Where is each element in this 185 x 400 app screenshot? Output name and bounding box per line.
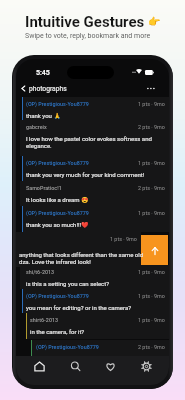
button[interactable]: SamoPratioc!1 [20, 181, 169, 206]
button[interactable]: shi/t6-2013 [20, 265, 169, 289]
staticText: in the camera, for it? [30, 328, 85, 335]
staticText: 1 pts · 9mo [138, 210, 165, 216]
staticText: 👉 [148, 16, 161, 28]
staticText: thank you so much!!!❤️ [26, 221, 89, 228]
staticText: (OP) Prestigious-You8779 [26, 160, 89, 166]
button[interactable]: Search [63, 361, 87, 383]
staticText: gabcreix [26, 124, 47, 130]
button[interactable]: anything that looks different than the s… [16, 232, 141, 267]
staticText: photographs [29, 85, 67, 93]
button[interactable]: (OP) Prestigious-You8779 [31, 340, 169, 356]
staticText: (OP) Prestigious-You8779 [26, 293, 89, 299]
button[interactable]: gabcreix [20, 120, 169, 156]
button[interactable]: (OP) Prestigious-You8779 [22, 206, 169, 232]
staticText: 5:45 [36, 69, 50, 77]
staticText: 1 pts · 9mo [138, 269, 165, 275]
staticText: shirt6-2013 [30, 317, 59, 323]
staticText: (OP) Prestigious-You8779 [26, 101, 89, 107]
staticText: you mean for editing? or in the camera? [26, 304, 132, 311]
button[interactable]: Back [18, 83, 29, 94]
staticText: 2 pts · 9mo [138, 124, 165, 130]
staticText: 1 pts · 9mo [110, 236, 137, 242]
button[interactable]: Upvote [141, 235, 168, 266]
staticText: shi/t6-2013 [26, 269, 55, 275]
staticText: 1 pts · 9mo [138, 317, 165, 323]
button[interactable]: (OP) Prestigious-You8779 [22, 289, 169, 313]
button[interactable]: More options [145, 83, 157, 94]
staticText: SamoPratioc!1 [26, 185, 62, 191]
staticText: thank you 🙏 [26, 112, 61, 119]
staticText: 2 pts · 9mo [138, 344, 165, 350]
button[interactable]: shirt6-2013 [26, 313, 169, 339]
staticText: is this a setting you can select? [26, 280, 110, 287]
staticText: (OP) Prestigious-You8779 [26, 210, 89, 216]
staticText: 1 pts · 9mo [138, 160, 165, 166]
staticText: I love how the pastel color evokes softn… [26, 135, 152, 150]
button[interactable]: Favorites [98, 361, 122, 383]
staticText: 1 pts · 9mo [138, 293, 165, 299]
staticText: 1 pts · 9mo [138, 101, 165, 107]
button[interactable]: Home [27, 361, 51, 383]
staticText: 2 pts · 9mo [138, 185, 165, 191]
staticText: (OP) Prestigious-You8779 [36, 344, 99, 350]
button[interactable]: Settings [134, 361, 158, 383]
staticText: It looks like a dream 😍 [26, 196, 89, 203]
staticText: Intuitive Gestures [25, 13, 145, 31]
staticText: anything that looks different than the s… [19, 251, 144, 266]
staticText: Swipe to vote, reply, bookmark and more [25, 32, 151, 40]
button[interactable]: (OP) Prestigious-You8779 [22, 97, 169, 120]
staticText: thank you very much for your kind commen… [26, 171, 145, 178]
button[interactable]: (OP) Prestigious-You8779 [22, 156, 169, 181]
